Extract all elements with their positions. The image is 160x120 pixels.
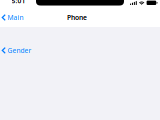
staticText: Gender xyxy=(8,46,32,55)
staticText: Phone xyxy=(67,13,87,22)
button[interactable]: Gender xyxy=(0,43,160,58)
button[interactable]: Main xyxy=(0,10,27,25)
staticText: Main xyxy=(8,13,24,22)
staticText: 5:01 xyxy=(11,0,25,5)
